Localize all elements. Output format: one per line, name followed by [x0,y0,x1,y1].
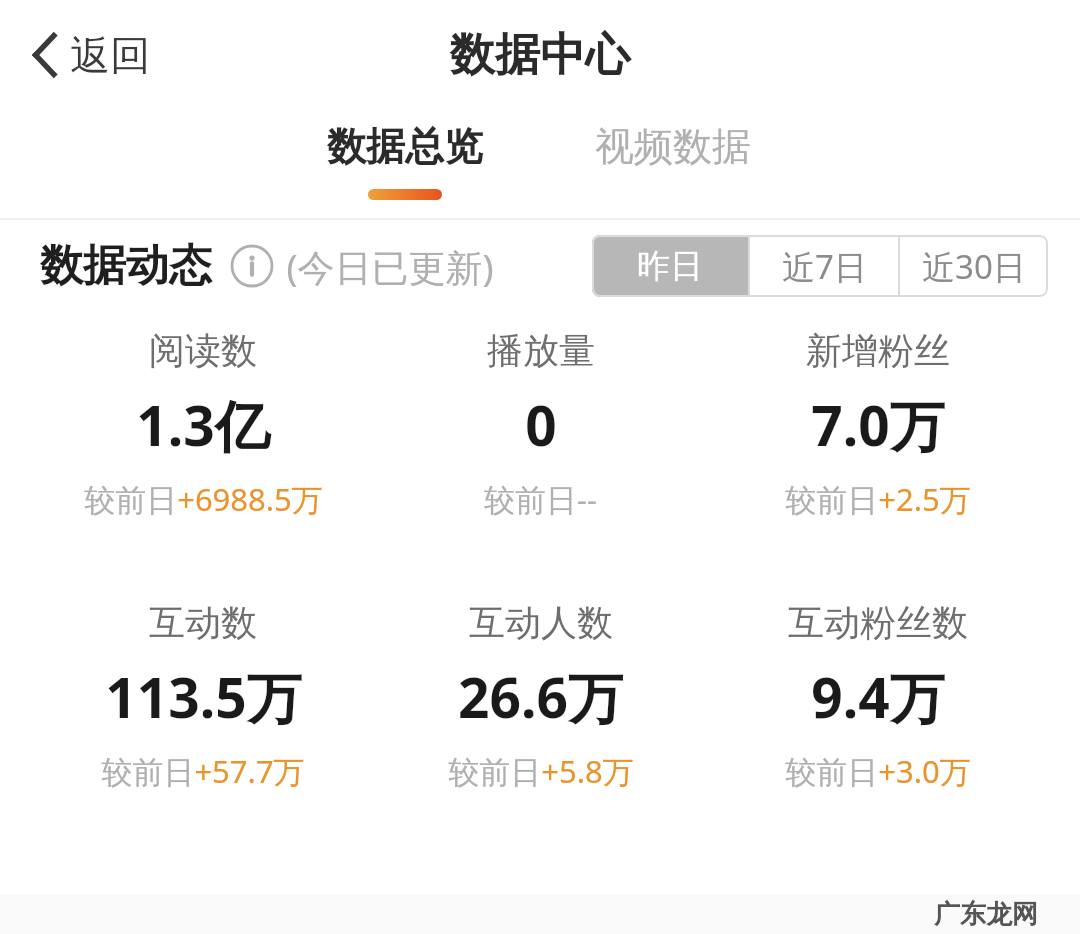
button[interactable]: 互动数 [34,600,372,792]
staticText: 互动粉丝数 [788,600,968,645]
button[interactable]: 数据总览 [300,110,510,220]
staticText: 昨日 [637,245,703,287]
button[interactable]: 新增粉丝 [709,328,1046,520]
staticText: 阅读数 [149,328,257,373]
staticText: 数据总览 [327,122,483,171]
button[interactable]: 播放量 [372,328,709,520]
staticText: 数据动态 [40,239,212,293]
button[interactable]: 视频数据 [568,110,778,220]
staticText: (今日已更新) [286,241,494,292]
staticText: 广东龙网 [934,898,1038,931]
staticText: 视频数据 [595,122,751,171]
staticText: 9.4万 [811,659,945,734]
button[interactable]: 互动人数 [372,600,709,792]
staticText: 互动人数 [469,600,613,645]
button[interactable]: 昨日 [592,235,748,297]
staticText: 较前日-- [484,478,597,520]
button[interactable]: 返回 [24,24,158,86]
button[interactable]: 阅读数 [34,328,372,520]
staticText: 近7日 [782,244,867,289]
staticText: 新增粉丝 [806,328,950,373]
staticText: 113.5万 [105,659,302,734]
button[interactable]: 近30日 [900,235,1048,297]
button[interactable]: 数据说明 [230,244,274,288]
staticText: 较前日+57.7万 [101,750,305,792]
staticText: 播放量 [487,328,595,373]
staticText: 数据中心 [450,27,630,84]
staticText: 26.6万 [458,659,623,734]
staticText: 较前日+2.5万 [785,478,971,520]
staticText: 较前日+3.0万 [785,750,971,792]
staticText: 0 [525,387,557,462]
staticText: 返回 [70,30,150,80]
staticText: 7.0万 [811,387,945,462]
staticText: 互动数 [149,600,257,645]
button[interactable]: 互动粉丝数 [709,600,1046,792]
staticText: 1.3亿 [136,387,270,462]
staticText: 较前日+6988.5万 [84,478,323,520]
button[interactable]: 近7日 [750,235,898,297]
staticText: 近30日 [922,244,1026,289]
staticText: 较前日+5.8万 [448,750,634,792]
